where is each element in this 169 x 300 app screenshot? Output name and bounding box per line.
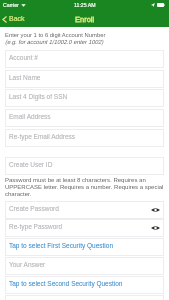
- staticText: Re-type Email Address: [9, 133, 76, 140]
- staticText: Tap to select Second Security Question: [9, 280, 123, 287]
- button[interactable]: Tap to select First Security Question: [5, 238, 164, 256]
- button[interactable]: Tap to select Second Security Question: [5, 276, 164, 294]
- staticText: Email Address: [9, 113, 51, 120]
- button[interactable]: Create User ID: [5, 157, 164, 175]
- staticText: 11:25 AM: [74, 2, 96, 8]
- button[interactable]: Last Name: [5, 70, 164, 88]
- button[interactable]: Email Address: [5, 109, 164, 127]
- staticText: Create Password: [9, 205, 59, 212]
- staticText: Your Answer: [9, 261, 46, 268]
- staticText: Back: [9, 15, 25, 23]
- staticText: Carrier: [3, 2, 19, 8]
- button[interactable]: Create Password: [5, 201, 164, 219]
- button[interactable]: Re-type Password: [5, 219, 164, 237]
- button[interactable]: Back: [0, 13, 29, 25]
- other: Show password: [151, 207, 160, 213]
- button[interactable]: Account #: [5, 50, 164, 68]
- other: Show password: [151, 225, 160, 231]
- staticText: Enter your 1 to 6 digit Account Number: [5, 32, 106, 39]
- staticText: Password must be at least 8 characters. …: [5, 177, 164, 198]
- staticText: Account #: [9, 54, 38, 61]
- staticText: Re-type Password: [9, 223, 63, 230]
- staticText: Enroll: [75, 15, 95, 23]
- staticText: Create User ID: [9, 161, 53, 168]
- button[interactable]: Last 4 Digits of SSN: [5, 89, 164, 107]
- staticText: Last 4 Digits of SSN: [9, 93, 68, 100]
- staticText: (e.g. for account 1/1002.0 enter 1002): [5, 39, 104, 46]
- button[interactable]: Re-type Email Address: [5, 129, 164, 147]
- button[interactable]: Your Answer: [5, 257, 164, 275]
- staticText: Tap to select First Security Question: [9, 242, 114, 249]
- staticText: Last Name: [9, 74, 41, 81]
- button[interactable]: Your Answer: [5, 295, 164, 300]
